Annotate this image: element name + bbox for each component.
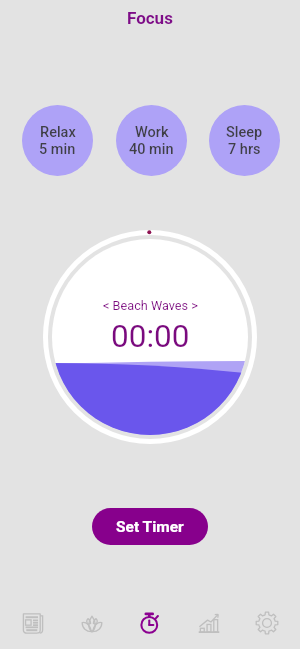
staticText: 5 min (39, 141, 76, 158)
staticText: Sleep (226, 124, 263, 141)
button[interactable]: Relax (22, 105, 93, 176)
staticText: Work (135, 124, 169, 141)
button[interactable]: News (10, 600, 56, 646)
button[interactable]: Sleep (209, 105, 280, 176)
button[interactable]: Settings (244, 600, 290, 646)
staticText: 40 min (129, 141, 174, 158)
staticText: Relax (40, 124, 76, 141)
staticText: < Beach Waves > (103, 298, 198, 313)
button[interactable]: Set Timer (92, 508, 208, 545)
button[interactable]: Work (116, 105, 187, 176)
button[interactable]: Meditate (69, 600, 115, 646)
staticText: Set Timer (116, 518, 184, 536)
button[interactable]: Timer (127, 600, 173, 646)
staticText: 7 hrs (228, 141, 261, 158)
staticText: 00:00 (111, 318, 190, 355)
button[interactable]: Stats (186, 600, 232, 646)
staticText: Focus (127, 8, 173, 28)
